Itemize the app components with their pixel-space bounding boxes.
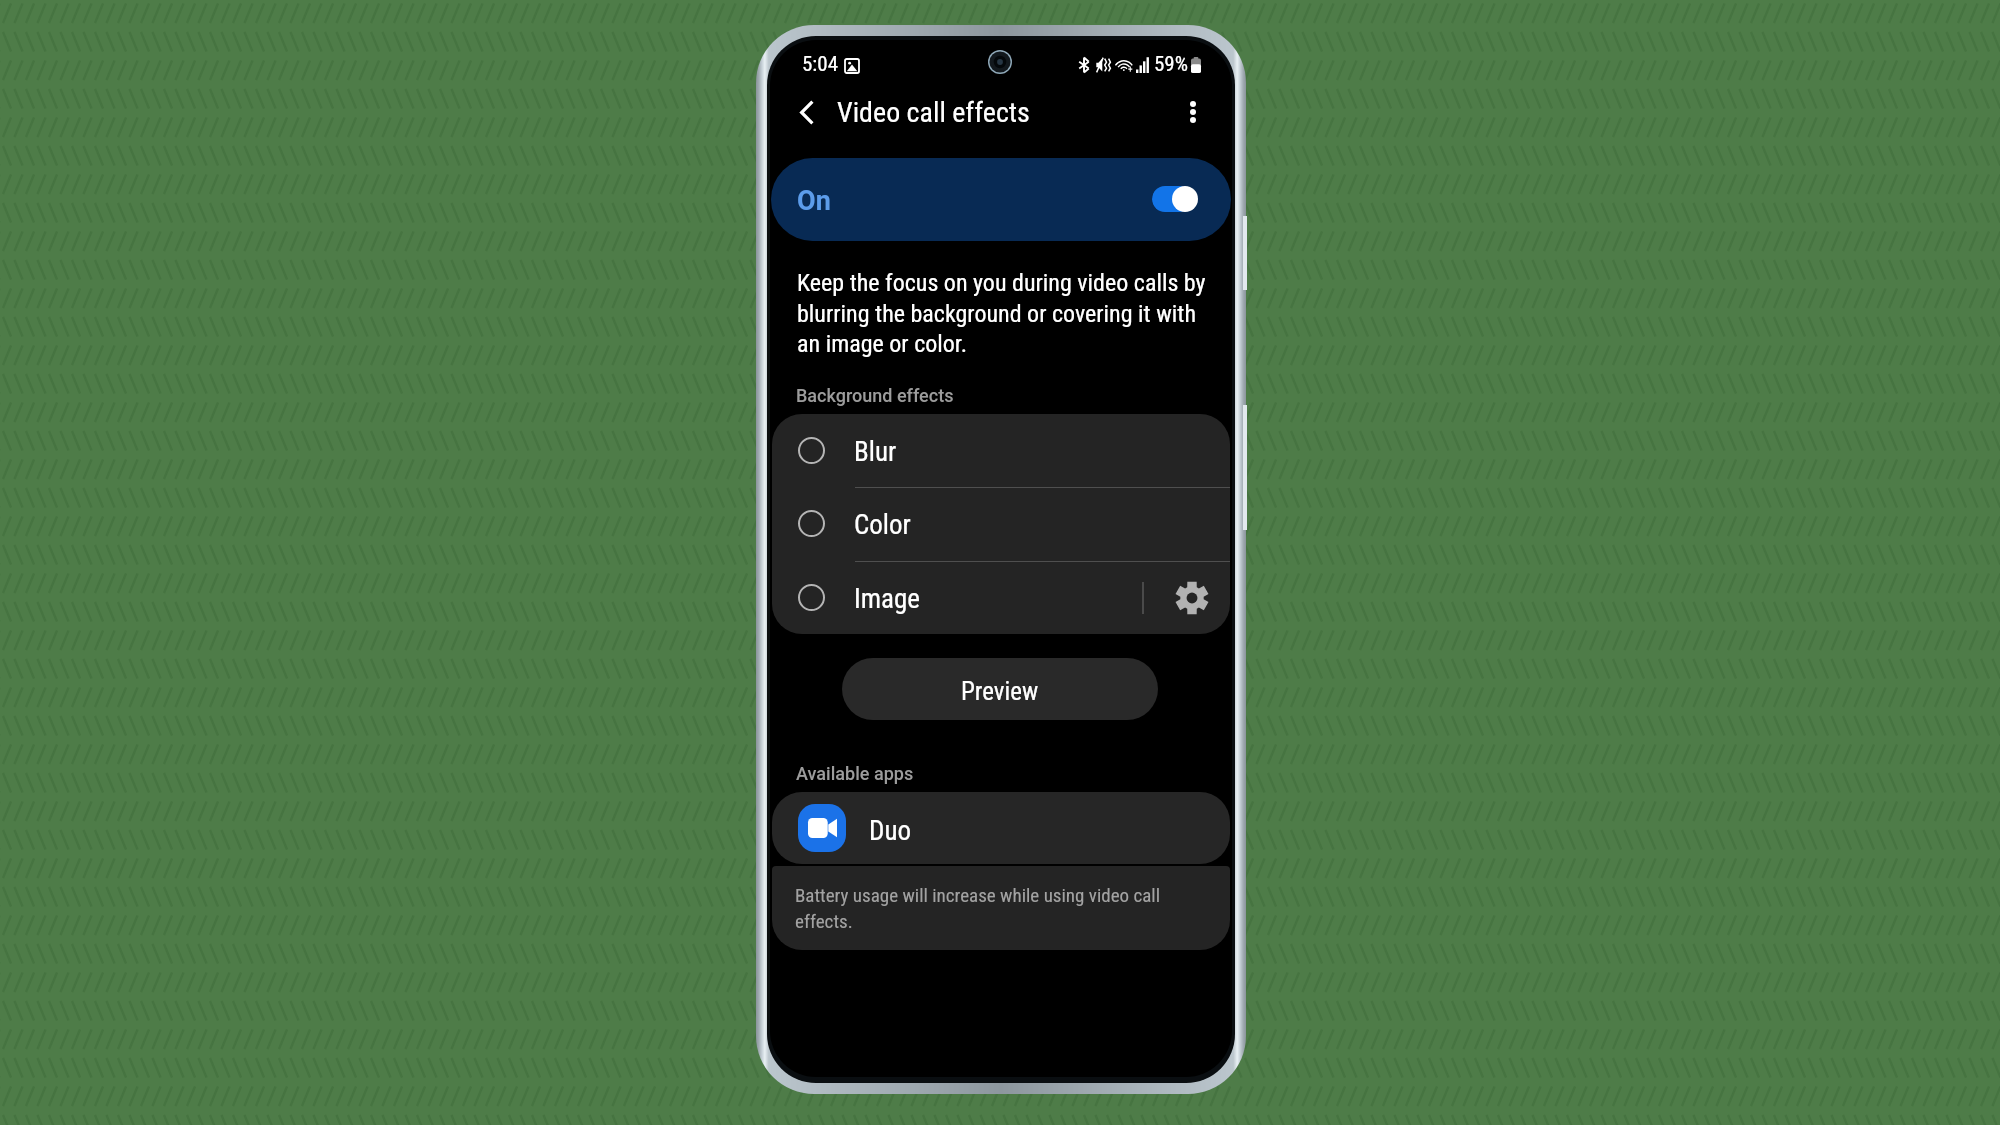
staticText: Background effects — [796, 385, 954, 406]
staticText: 59% — [1154, 52, 1189, 77]
staticText: Color — [854, 509, 911, 541]
button[interactable]: Navigate up — [778, 78, 836, 146]
staticText: 5:04 — [802, 52, 839, 77]
button[interactable]: Video call effects on — [1152, 184, 1200, 214]
staticText: Available apps — [796, 763, 914, 784]
button[interactable]: Image settings — [1154, 561, 1230, 634]
staticText: Keep the focus on you during video calls… — [797, 269, 1206, 358]
button[interactable]: Duo — [772, 792, 1230, 864]
staticText: Duo — [869, 815, 912, 847]
button[interactable]: On — [771, 158, 1231, 241]
staticText: Image — [854, 583, 920, 615]
button[interactable]: Blur — [772, 414, 1230, 487]
button[interactable]: Color — [772, 487, 1230, 560]
staticText: Battery usage will increase while using … — [795, 884, 1161, 933]
staticText: Video call effects — [837, 96, 1030, 129]
staticText: On — [797, 185, 831, 217]
button[interactable]: Image — [772, 561, 1230, 634]
staticText: Blur — [854, 436, 897, 468]
button[interactable]: More options — [1168, 78, 1218, 146]
staticText: Preview — [961, 677, 1039, 706]
button[interactable]: Preview — [842, 658, 1158, 720]
